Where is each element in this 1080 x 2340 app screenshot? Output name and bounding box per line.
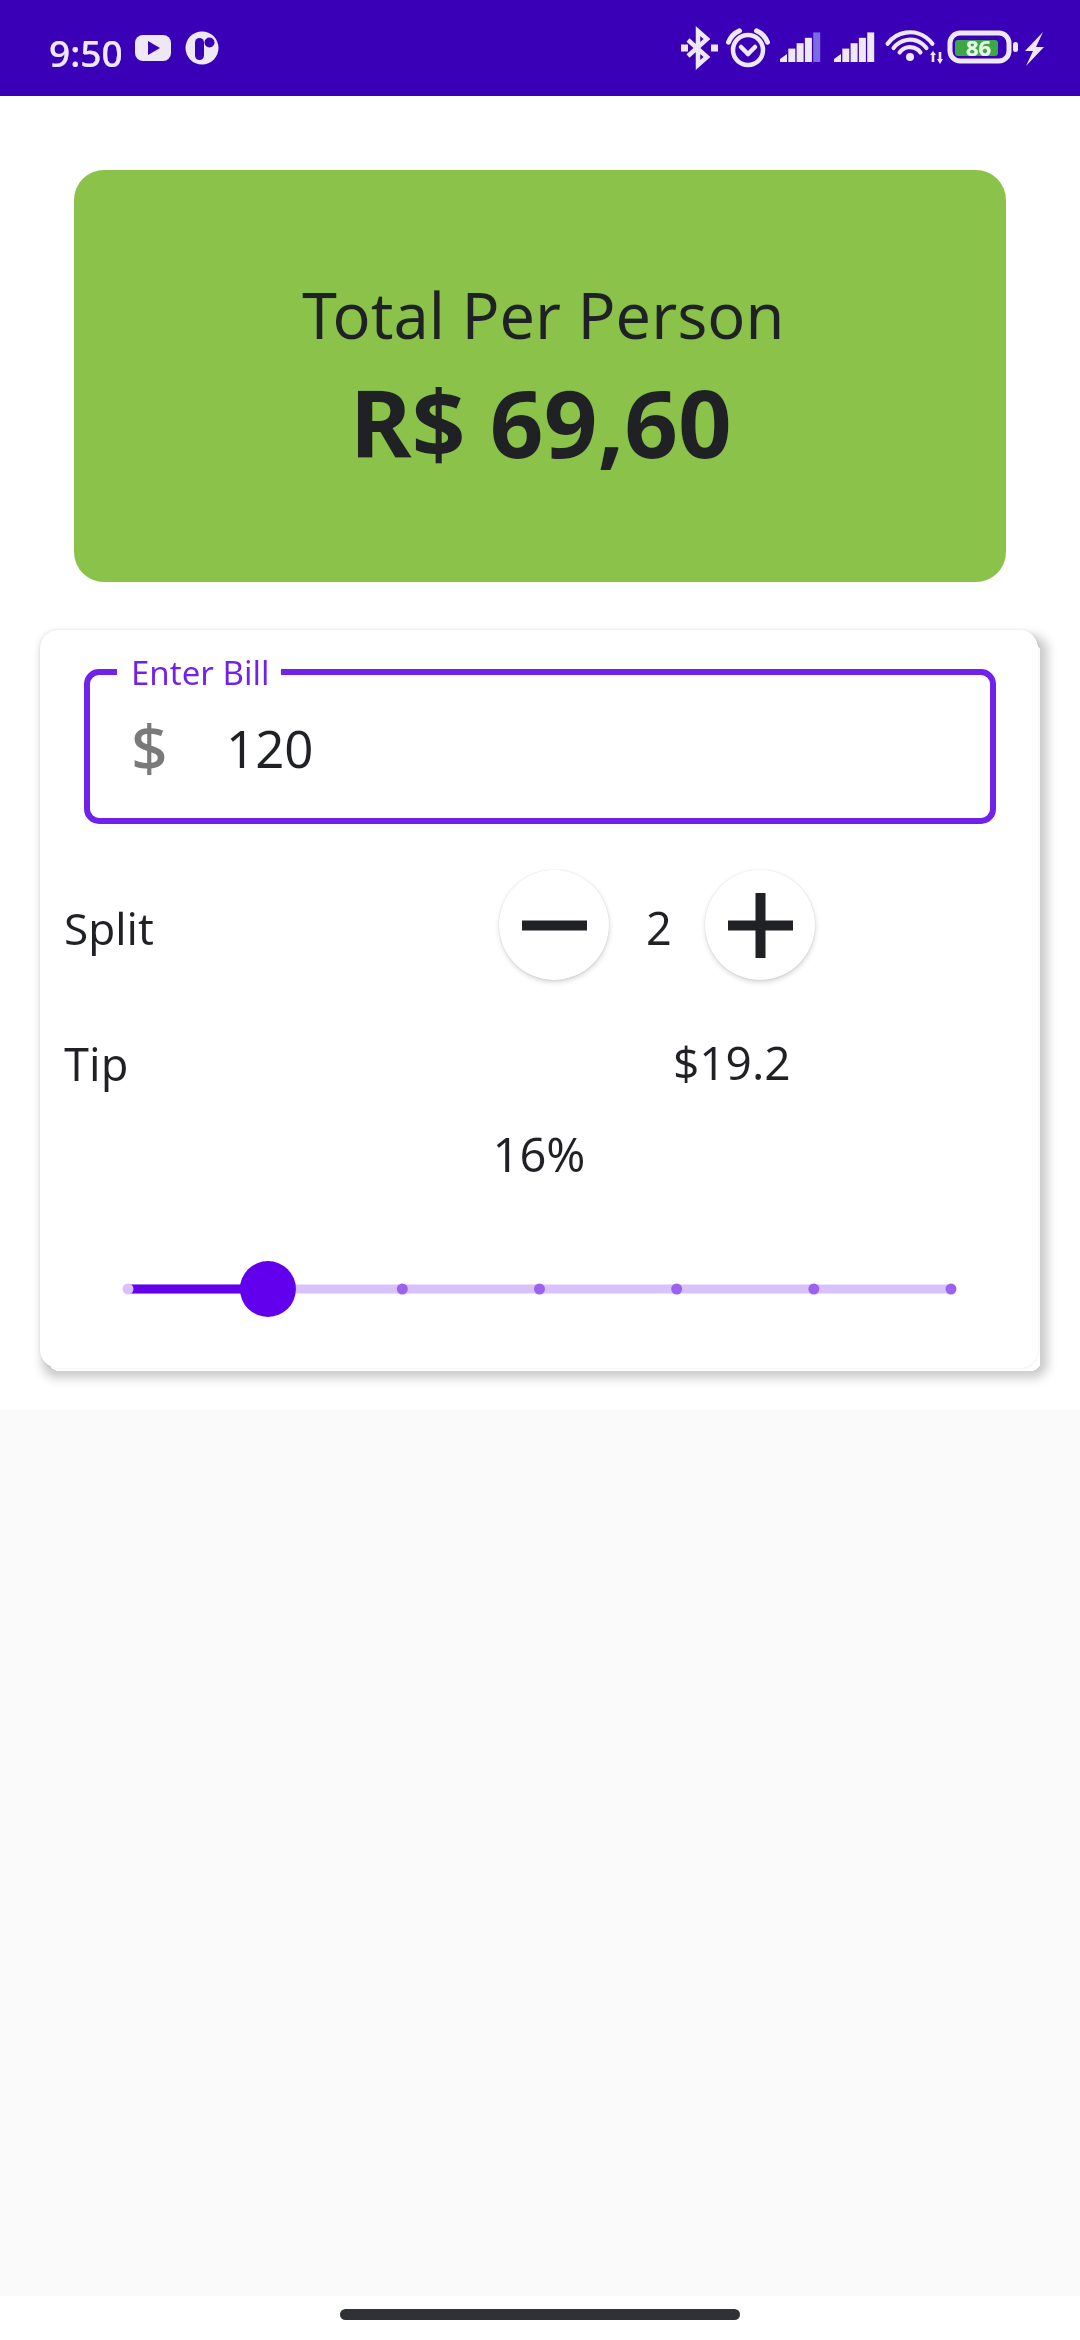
staticText: Tip — [64, 1033, 129, 1094]
staticText: R$ 69,60 — [350, 358, 732, 486]
staticText: 2 — [646, 897, 672, 958]
staticText: Enter Bill — [131, 650, 270, 695]
staticText: Total Per Person — [302, 272, 785, 358]
button[interactable]: Total Per Person — [74, 170, 1006, 582]
staticText: 16% — [40, 1122, 1038, 1186]
staticText: 86 — [966, 32, 992, 62]
button[interactable]: Increase split — [705, 870, 815, 980]
button[interactable]: Home — [340, 2309, 740, 2320]
staticText: Split — [64, 898, 154, 958]
staticText: $19.2 — [673, 1031, 791, 1094]
staticText: 9:50 — [49, 27, 123, 77]
staticText: 120 — [226, 713, 314, 782]
button[interactable]: Enter Bill — [84, 669, 996, 824]
button[interactable]: Tip percentage slider — [84, 1249, 996, 1329]
button[interactable]: Decrease split — [499, 870, 609, 980]
staticText: $ — [131, 703, 168, 790]
